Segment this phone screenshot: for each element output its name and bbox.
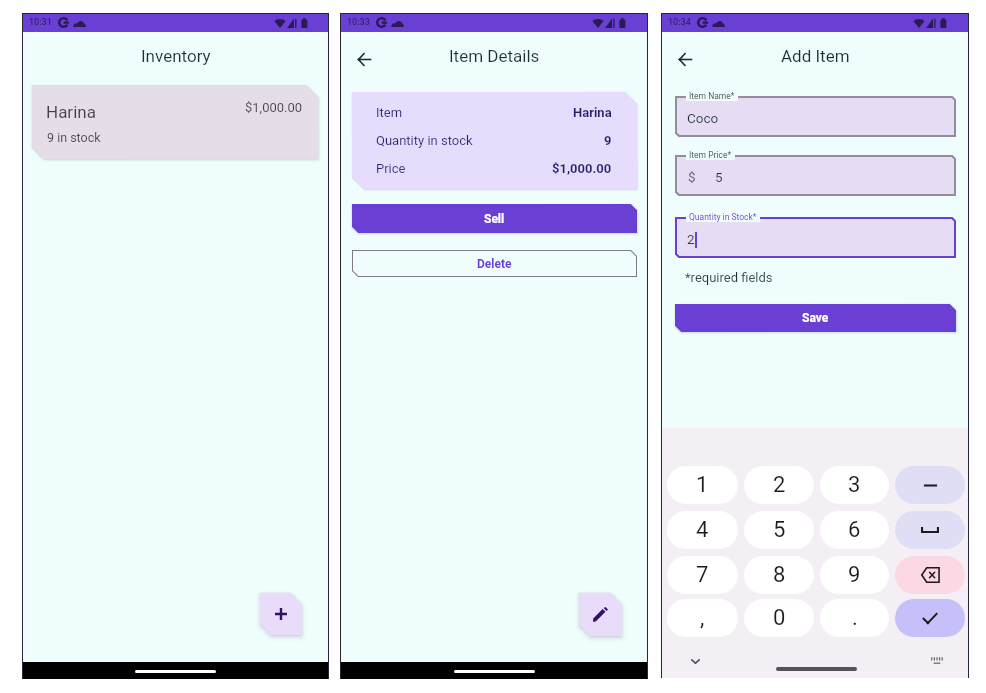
button[interactable]: Switch keyboard bbox=[926, 650, 947, 671]
staticText: *required fields bbox=[685, 270, 773, 285]
staticText: Save bbox=[802, 311, 829, 325]
staticText: 6 bbox=[848, 517, 861, 543]
button[interactable]: Add item bbox=[260, 593, 302, 635]
staticText: 2 bbox=[773, 472, 786, 498]
button[interactable]: 0 bbox=[744, 599, 814, 637]
staticText: Item Price* bbox=[689, 150, 732, 160]
staticText: 0 bbox=[773, 605, 786, 631]
staticText: 5 bbox=[773, 517, 786, 543]
button[interactable]: , bbox=[667, 599, 738, 637]
staticText: Harina bbox=[573, 105, 612, 120]
staticText: 8 bbox=[773, 562, 786, 588]
button[interactable] bbox=[675, 217, 956, 258]
button[interactable]: 6 bbox=[820, 511, 889, 549]
staticText: 9 bbox=[604, 133, 612, 148]
staticText: Add Item bbox=[781, 46, 850, 66]
button[interactable] bbox=[675, 96, 956, 137]
button[interactable]: Edit item bbox=[579, 593, 622, 636]
staticText: Item Name* bbox=[689, 91, 735, 101]
button[interactable]: 9 bbox=[820, 556, 889, 594]
staticText: Item Details bbox=[449, 46, 540, 66]
button[interactable]: Back bbox=[670, 44, 700, 74]
button[interactable]: Hide keyboard bbox=[686, 652, 705, 671]
button[interactable]: 1 bbox=[667, 466, 738, 504]
button[interactable]: 2 bbox=[744, 466, 814, 504]
staticText: Coco bbox=[687, 110, 719, 126]
staticText: Sell bbox=[484, 212, 505, 226]
staticText: 5 bbox=[715, 169, 723, 185]
staticText: 2 bbox=[687, 231, 695, 247]
staticText: 3 bbox=[848, 472, 861, 498]
button[interactable]: Minus bbox=[895, 466, 965, 504]
staticText: 10:34 bbox=[668, 17, 691, 28]
staticText: Item bbox=[376, 105, 403, 120]
staticText: 1 bbox=[696, 472, 709, 498]
staticText: 4 bbox=[696, 517, 709, 543]
button[interactable]: 7 bbox=[667, 556, 738, 594]
button[interactable]: 5 bbox=[744, 511, 814, 549]
staticText: , bbox=[700, 605, 705, 631]
staticText: Quantity in stock bbox=[376, 133, 473, 148]
button[interactable]: 4 bbox=[667, 511, 738, 549]
staticText: 7 bbox=[696, 562, 709, 588]
button[interactable]: Delete bbox=[352, 250, 637, 277]
staticText: $1,000.00 bbox=[245, 100, 303, 115]
staticText: . bbox=[852, 605, 858, 631]
button[interactable]: 8 bbox=[744, 556, 814, 594]
staticText: $1,000.00 bbox=[552, 161, 612, 176]
staticText: 10:33 bbox=[347, 17, 370, 28]
staticText: 10:31 bbox=[29, 17, 52, 28]
staticText: Quantity in Stock* bbox=[689, 212, 757, 222]
button[interactable]: Backspace bbox=[895, 556, 965, 594]
button[interactable]: Back bbox=[349, 44, 379, 74]
staticText: Harina bbox=[46, 102, 96, 122]
staticText: Inventory bbox=[141, 46, 211, 66]
staticText: $ bbox=[688, 169, 696, 185]
staticText: 9 in stock bbox=[47, 130, 101, 145]
button[interactable]: Enter bbox=[895, 599, 965, 637]
button[interactable]: Space bbox=[895, 511, 965, 549]
button[interactable]: Save bbox=[675, 304, 956, 332]
button[interactable]: 3 bbox=[820, 466, 889, 504]
button[interactable]: Sell bbox=[352, 204, 637, 233]
button[interactable]: . bbox=[820, 599, 889, 637]
button[interactable] bbox=[675, 155, 956, 196]
staticText: Delete bbox=[477, 257, 512, 271]
button[interactable]: Harina bbox=[32, 85, 318, 159]
staticText: 9 bbox=[848, 562, 861, 588]
staticText: Price bbox=[376, 161, 406, 176]
